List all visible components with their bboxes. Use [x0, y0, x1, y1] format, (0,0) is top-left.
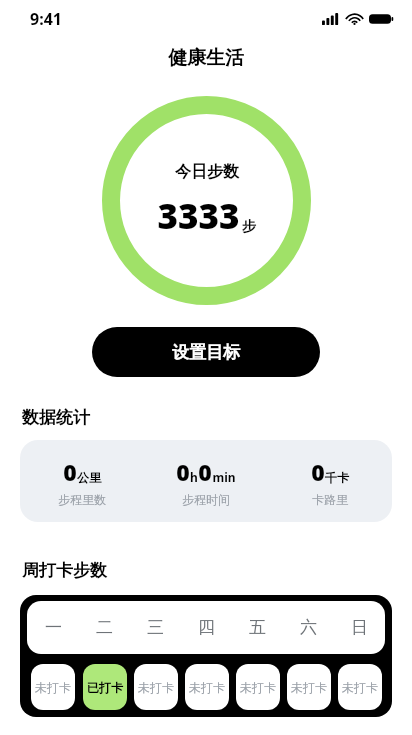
button[interactable]: 未打卡 — [236, 664, 280, 710]
staticText: 0 — [198, 456, 212, 487]
staticText: 未打卡 — [240, 680, 276, 695]
staticText: 0 — [311, 456, 325, 487]
staticText: 五 — [249, 617, 266, 638]
staticText: 公里 — [77, 470, 101, 485]
button[interactable]: 设置目标 — [92, 327, 320, 377]
button[interactable]: 未打卡 — [287, 664, 331, 710]
staticText: 未打卡 — [189, 680, 225, 695]
staticText: 3333 — [157, 192, 240, 240]
staticText: 0 — [176, 456, 190, 487]
staticText: 设置目标 — [172, 342, 240, 363]
button[interactable]: 未打卡 — [31, 664, 75, 710]
staticText: 千卡 — [325, 470, 349, 485]
button[interactable]: 未打卡 — [185, 664, 229, 710]
staticText: 步 — [242, 218, 256, 236]
button[interactable]: 已打卡 — [83, 664, 127, 710]
staticText: 日 — [351, 617, 368, 638]
button[interactable]: 0 — [20, 440, 392, 522]
staticText: 卡路里 — [312, 492, 348, 507]
staticText: h — [190, 469, 198, 485]
staticText: 已打卡 — [87, 680, 123, 695]
staticText: 步程里数 — [58, 492, 106, 507]
staticText: 9:41 — [30, 8, 62, 30]
staticText: 未打卡 — [35, 680, 71, 695]
button[interactable]: 未打卡 — [134, 664, 178, 710]
staticText: 数据统计 — [22, 407, 90, 428]
staticText: min — [212, 469, 236, 485]
staticText: 一 — [45, 617, 62, 638]
staticText: 今日步数 — [175, 162, 239, 182]
staticText: 健康生活 — [168, 46, 244, 70]
staticText: 三 — [147, 617, 164, 638]
button[interactable]: 未打卡 — [338, 664, 382, 710]
staticText: 二 — [96, 617, 113, 638]
staticText: 六 — [300, 617, 317, 638]
staticText: 0 — [63, 456, 77, 487]
staticText: 未打卡 — [291, 680, 327, 695]
staticText: 未打卡 — [342, 680, 378, 695]
staticText: 四 — [198, 617, 215, 638]
staticText: 未打卡 — [138, 680, 174, 695]
staticText: 周打卡步数 — [22, 560, 107, 581]
staticText: 步程时间 — [182, 492, 230, 507]
